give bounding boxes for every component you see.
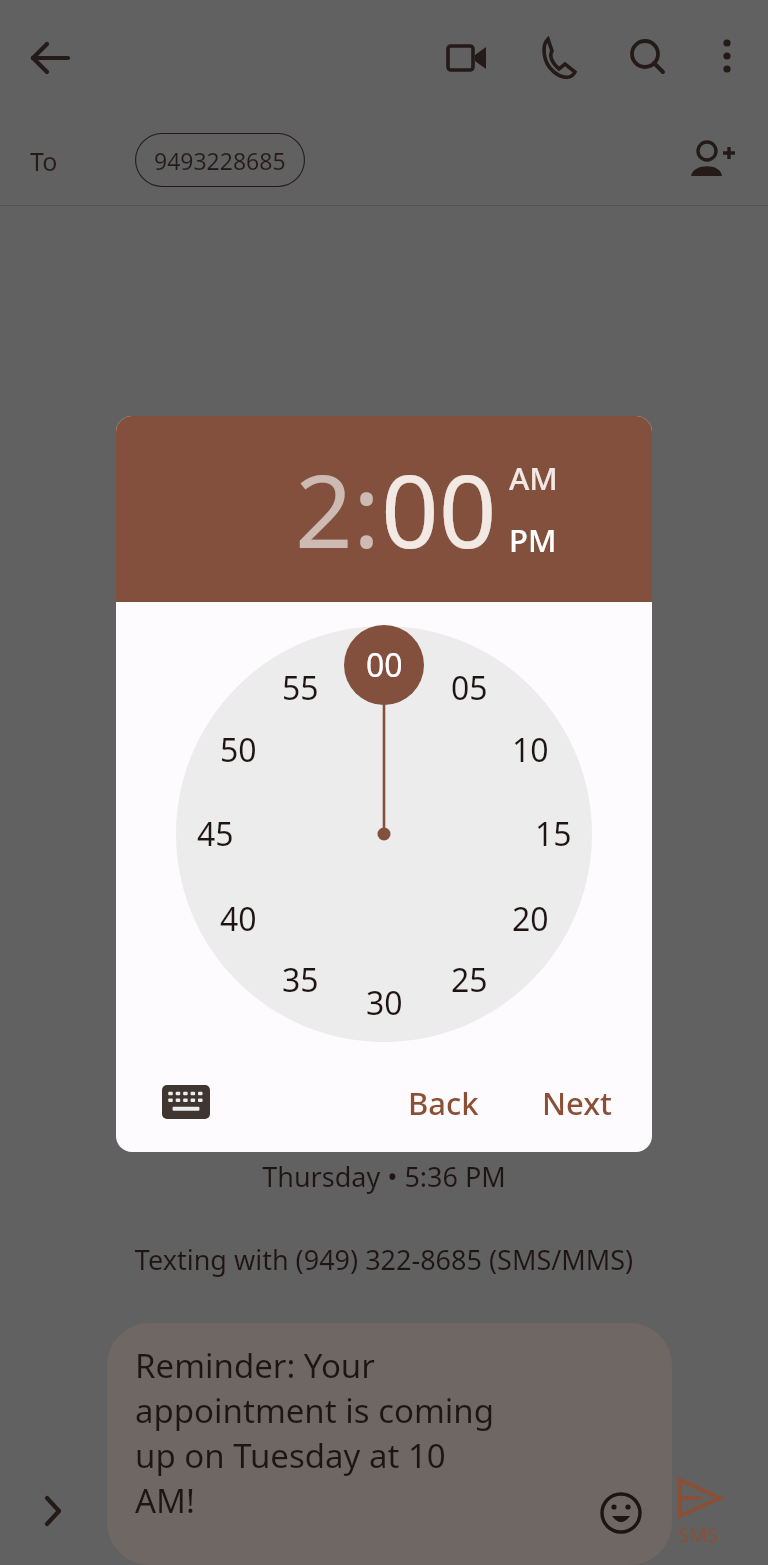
button[interactable]: Back	[392, 1072, 495, 1134]
staticText: PM	[509, 519, 557, 561]
button[interactable]: 25	[435, 954, 503, 1006]
button[interactable]: 50	[204, 724, 272, 776]
button[interactable]: Back	[20, 27, 82, 89]
staticText: 25	[451, 958, 488, 1002]
staticText: AM	[509, 457, 558, 499]
button[interactable]: Video call	[436, 27, 498, 89]
staticText: 15	[535, 812, 572, 856]
button[interactable]: 00	[350, 639, 418, 691]
staticText: SMS	[678, 1521, 719, 1548]
button[interactable]: Next	[526, 1072, 628, 1134]
button[interactable]: 00	[381, 440, 497, 578]
button[interactable]: Switch to text input	[154, 1076, 218, 1128]
button[interactable]: 40	[204, 893, 272, 945]
staticText: 05	[451, 666, 488, 710]
button[interactable]: 05	[435, 662, 503, 714]
staticText: 30	[366, 981, 403, 1025]
staticText: Reminder: Your	[135, 1343, 375, 1388]
staticText: 00	[381, 440, 497, 578]
button[interactable]: Call	[527, 27, 589, 89]
button[interactable]: 20	[496, 893, 564, 945]
button[interactable]: AM	[509, 457, 558, 499]
button[interactable]: Insert emoji	[592, 1484, 650, 1542]
staticText: 55	[282, 666, 319, 710]
staticText: 10	[512, 728, 549, 772]
button[interactable]: Add recipient	[684, 132, 742, 190]
button[interactable]: More options	[698, 27, 756, 85]
staticText: 35	[282, 958, 319, 1002]
staticText: :	[353, 440, 381, 578]
staticText: appointment is coming	[135, 1388, 495, 1433]
button[interactable]: 30	[350, 977, 418, 1029]
staticText: 45	[197, 812, 234, 856]
staticText: 2	[295, 440, 353, 578]
button[interactable]: Expand	[22, 1480, 84, 1542]
staticText: AM!	[135, 1478, 195, 1523]
staticText: 40	[220, 897, 257, 941]
button[interactable]: Search	[617, 27, 679, 89]
button[interactable]: 9493228685	[135, 133, 305, 187]
button[interactable]: 45	[181, 808, 249, 860]
button[interactable]: 2	[295, 440, 353, 578]
staticText: Texting with (949) 322-8685 (SMS/MMS)	[0, 1241, 768, 1278]
button[interactable]: 55	[266, 662, 334, 714]
staticText: Thursday • 5:36 PM	[0, 1158, 768, 1195]
staticText: 00	[366, 643, 403, 687]
button[interactable]: PM	[509, 519, 557, 561]
button[interactable]: 10	[496, 724, 564, 776]
staticText: Back	[408, 1082, 479, 1124]
button[interactable]: 35	[266, 954, 334, 1006]
staticText: To	[30, 144, 58, 178]
button[interactable]: Reminder: Your	[107, 1323, 672, 1565]
staticText: Next	[542, 1082, 612, 1124]
staticText: 9493228685	[154, 145, 286, 176]
button[interactable]: 15	[519, 808, 587, 860]
staticText: 50	[220, 728, 257, 772]
staticText: up on Tuesday at 10	[135, 1433, 446, 1478]
staticText: 20	[512, 897, 549, 941]
button[interactable]: Send SMS	[660, 1472, 736, 1548]
